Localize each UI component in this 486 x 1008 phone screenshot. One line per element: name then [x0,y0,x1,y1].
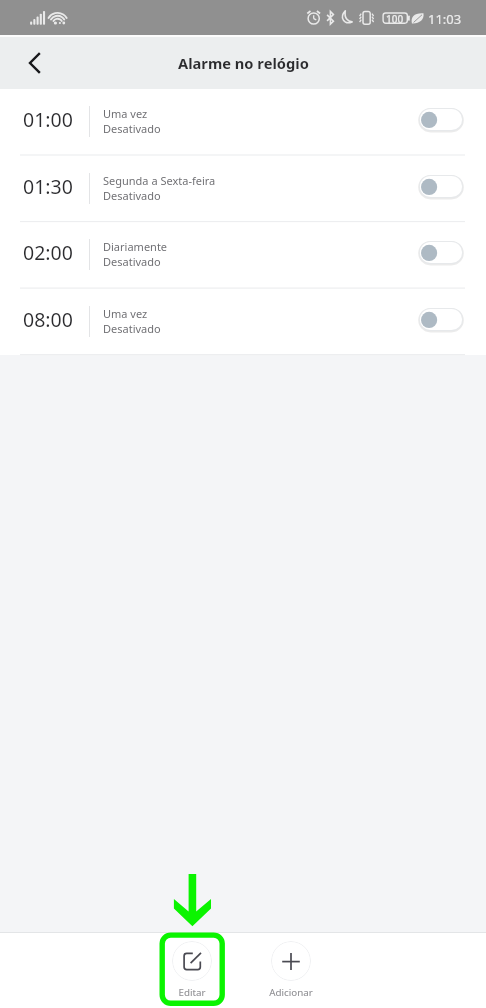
button[interactable]: 08:00 [0,289,486,354]
button[interactable]: 01:00 [0,89,486,154]
staticText: Uma vez [103,306,148,321]
button[interactable]: Alarm toggle [419,108,463,131]
button[interactable]: Alarm toggle [419,175,463,198]
staticText: 08:00 [23,306,73,333]
staticText: 01:30 [23,173,73,200]
staticText: 02:00 [23,239,73,266]
staticText: 01:00 [23,106,73,133]
staticText: Desativado [103,254,161,269]
button[interactable]: Editar [161,933,223,1008]
staticText: Adicionar [269,986,313,999]
button[interactable]: Back [12,43,52,83]
staticText: Segunda a Sexta-feira [103,173,216,188]
staticText: 100 [386,12,404,26]
staticText: Desativado [103,321,161,336]
button[interactable]: 02:00 [0,222,486,287]
staticText: Diariamente [103,239,168,254]
staticText: Desativado [103,188,161,203]
button[interactable]: Alarm toggle [419,241,463,264]
staticText: 11:03 [428,10,462,28]
button[interactable]: Adicionar [260,933,322,1008]
staticText: Editar [178,986,206,999]
staticText: Uma vez [103,106,148,121]
button[interactable]: 01:30 [0,156,486,221]
button[interactable]: Alarm toggle [419,308,463,331]
staticText: Alarme no relógio [178,53,309,73]
staticText: Desativado [103,121,161,136]
